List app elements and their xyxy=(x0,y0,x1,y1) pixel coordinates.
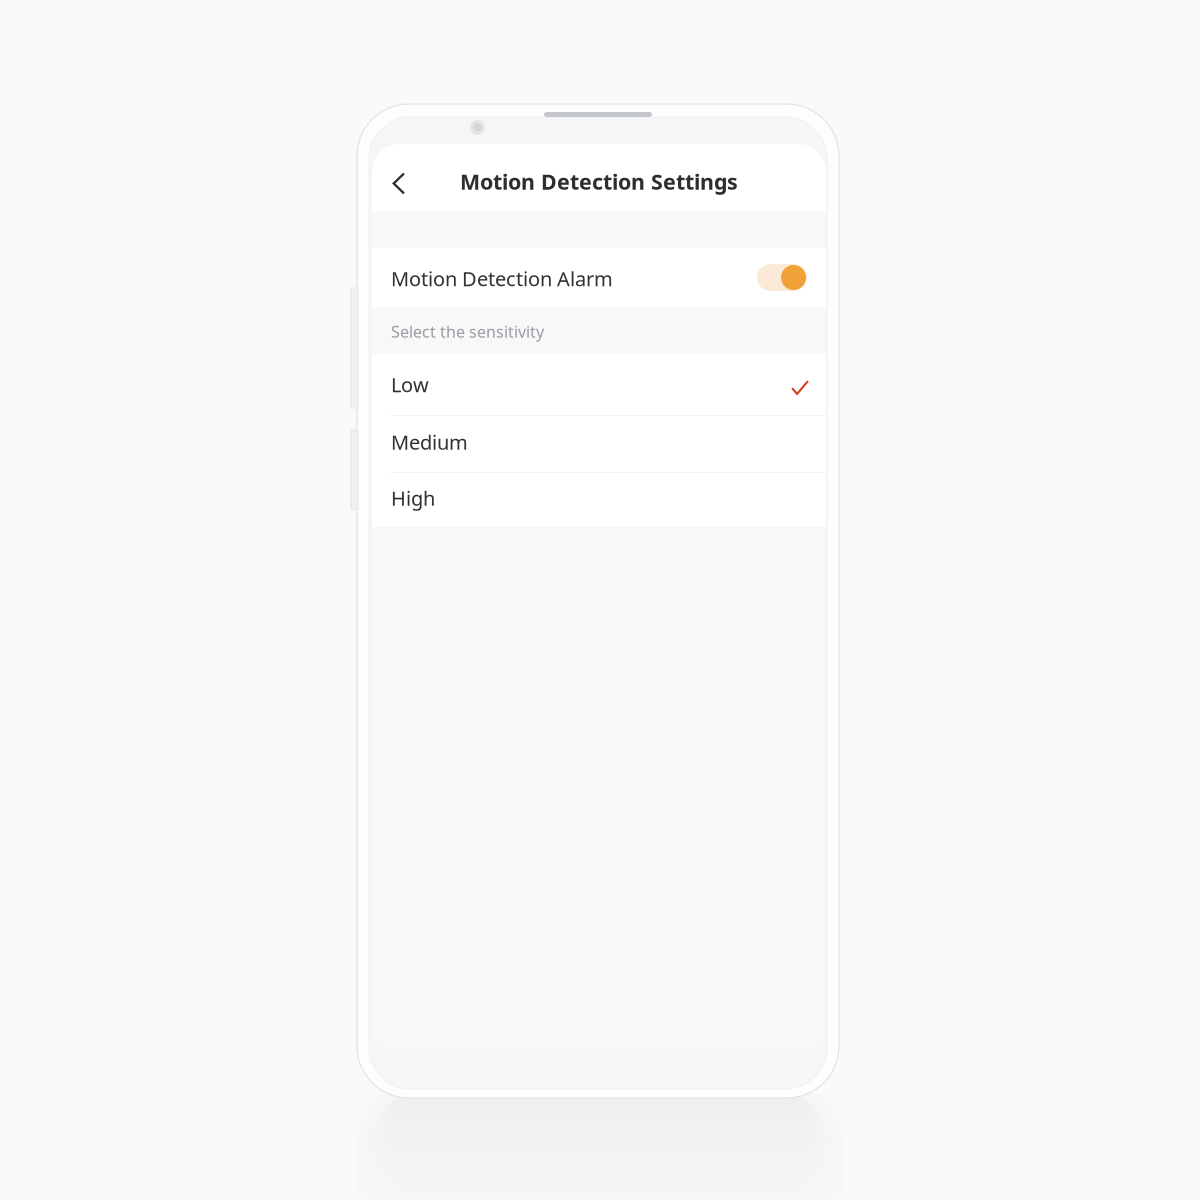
button[interactable]: Motion Detection Alarm xyxy=(372,248,826,307)
staticText: Medium xyxy=(391,429,468,455)
button[interactable]: High xyxy=(372,473,826,527)
staticText: Select the sensitivity xyxy=(391,321,544,342)
staticText: Motion Detection Settings xyxy=(460,167,738,196)
button[interactable]: Medium xyxy=(372,416,826,472)
staticText: Low xyxy=(391,371,429,398)
staticText: Motion Detection Alarm xyxy=(391,265,613,292)
staticText: High xyxy=(391,485,435,511)
button[interactable]: Low xyxy=(372,354,826,415)
button[interactable]: Back xyxy=(372,150,430,211)
